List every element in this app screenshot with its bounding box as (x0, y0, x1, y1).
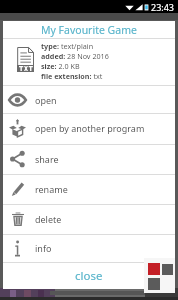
other: Delete (12, 212, 24, 226)
button[interactable]: Open by another program (3, 113, 175, 143)
other: Info (15, 240, 20, 257)
staticText: rename (35, 183, 68, 195)
button[interactable]: Open (3, 85, 175, 114)
staticText: My Favourite Game (41, 23, 137, 37)
staticText: size: 2.0 KB (41, 61, 80, 71)
button[interactable]: Delete (3, 204, 175, 234)
button[interactable]: Info (3, 234, 175, 262)
button[interactable]: Rename (3, 174, 175, 204)
staticText: added: 28 Nov 2016 (41, 51, 109, 61)
other: Rename (11, 182, 25, 196)
staticText: share (35, 153, 59, 165)
staticText: 23:43 (151, 1, 175, 13)
other: Open by another program (9, 119, 26, 137)
button[interactable]: Share (3, 144, 175, 174)
button[interactable]: close (3, 263, 175, 288)
staticText: file extension: txt (41, 71, 103, 81)
other: Open (9, 95, 26, 105)
staticText: type: text/plain (41, 41, 94, 51)
staticText: open by another program (35, 122, 145, 134)
staticText: close (75, 268, 103, 284)
staticText: open (35, 94, 57, 106)
staticText: info (35, 242, 52, 254)
staticText: delete (35, 213, 62, 225)
other: Share (10, 151, 26, 167)
